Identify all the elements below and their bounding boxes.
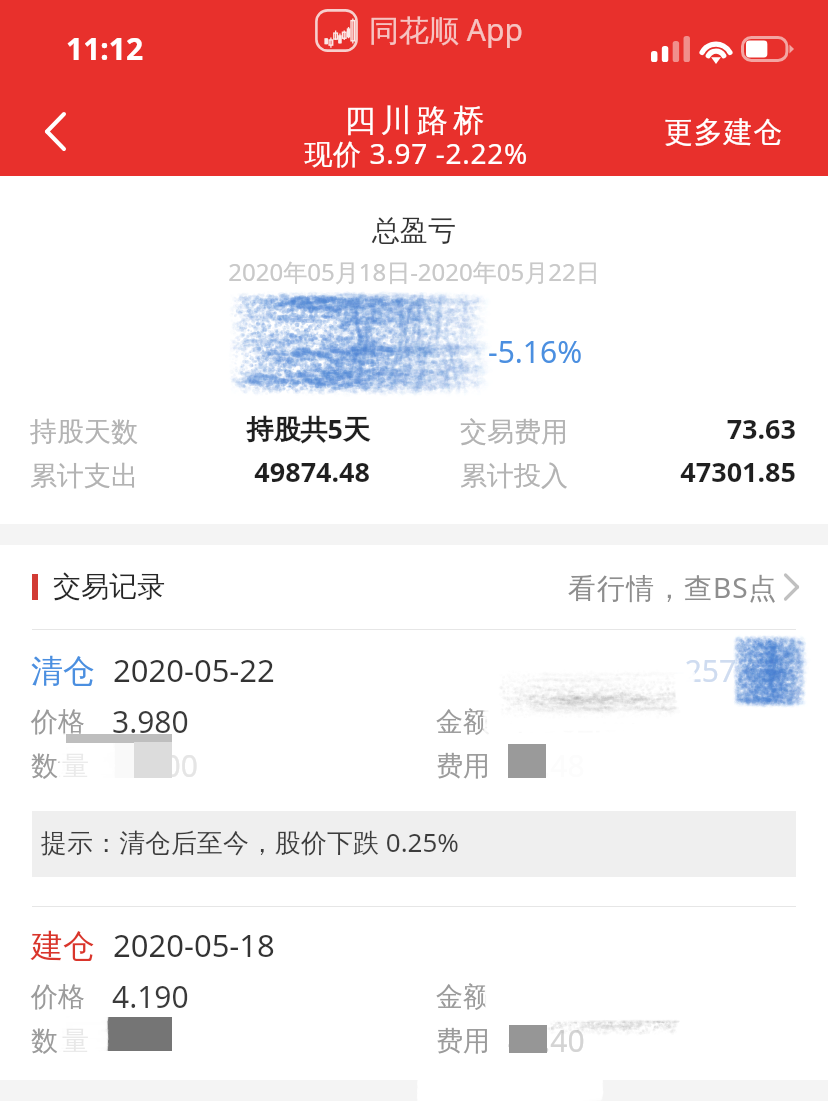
button[interactable]: 清仓	[0, 630, 828, 796]
staticText: 同花顺 App	[369, 9, 523, 50]
staticText: 提示：清仓后至今，股价下跌 0.25%	[41, 824, 459, 860]
staticText: 更多建仓	[664, 114, 784, 151]
staticText: 费用	[436, 749, 490, 783]
button[interactable]: 交易记录	[53, 569, 165, 604]
staticText: 持股天数	[30, 415, 138, 449]
staticText: 49874.48	[150, 453, 370, 490]
staticText: 11:12	[66, 28, 144, 69]
staticText: 累计支出	[30, 459, 138, 493]
staticText: 总盈亏	[0, 213, 828, 248]
staticText: 四川路桥	[3, 101, 828, 140]
staticText: 建仓	[31, 926, 95, 966]
staticText: -257.63	[675, 650, 779, 691]
staticText: 价格	[31, 980, 85, 1014]
staticText: 47362.00	[508, 701, 637, 742]
staticText: 47301.85	[575, 453, 796, 490]
staticText: 11900	[112, 745, 198, 786]
staticText: 价格	[31, 705, 85, 739]
staticText: 金额	[436, 980, 490, 1014]
staticText: 2020年05月18日-2020年05月22日	[0, 255, 828, 288]
staticText: 2020-05-18	[113, 924, 275, 966]
staticText: 清仓	[31, 651, 95, 691]
staticText: 累计投入	[460, 459, 568, 493]
button[interactable]: 看行情，查BS点	[568, 568, 799, 606]
staticText: 31.48	[508, 745, 585, 786]
staticText: 持股共5天	[150, 410, 370, 447]
button[interactable]: Back	[14, 96, 96, 166]
staticText: 2020-05-22	[113, 649, 275, 691]
staticText: 数量	[31, 1024, 85, 1058]
staticText: 73.63	[575, 410, 796, 447]
button[interactable]: 更多建仓	[664, 114, 784, 151]
staticText: 量	[62, 749, 89, 783]
staticText: 3.980	[112, 701, 189, 742]
staticText: 42.40	[508, 1020, 585, 1061]
staticText: 量	[62, 1024, 89, 1058]
staticText: 交易记录	[53, 569, 165, 604]
staticText: -5.16%	[488, 331, 583, 372]
staticText: 看行情，查BS点	[568, 568, 778, 606]
staticText: 交易费用	[460, 415, 568, 449]
staticText: 数量	[31, 749, 85, 783]
staticText: 现价 3.97 -2.22%	[2, 134, 828, 172]
staticText: 金额	[436, 705, 490, 739]
staticText: 4.190	[112, 976, 189, 1017]
staticText: 费用	[436, 1024, 490, 1058]
button[interactable]: 建仓	[0, 907, 828, 1073]
